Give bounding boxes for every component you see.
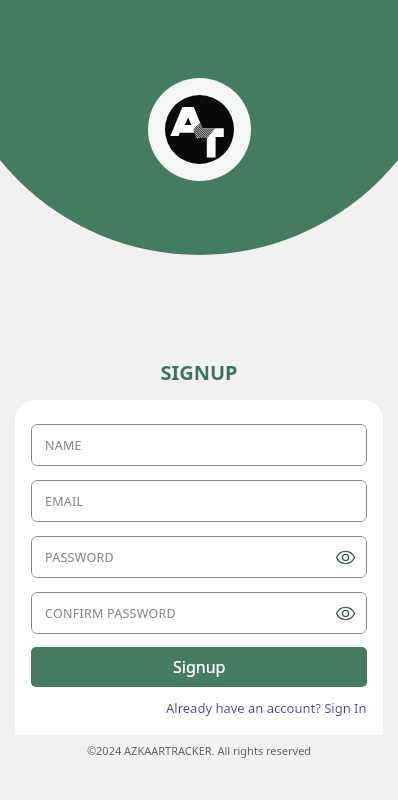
button[interactable]: Show password bbox=[334, 602, 356, 624]
staticText: SIGNUP bbox=[0, 359, 398, 386]
button[interactable]: Signup bbox=[31, 647, 367, 687]
staticText: EMAIL bbox=[45, 493, 84, 510]
button[interactable]: Show password bbox=[334, 546, 356, 568]
button[interactable]: PASSWORD bbox=[31, 536, 367, 578]
button[interactable]: CONFIRM PASSWORD bbox=[31, 592, 367, 634]
button[interactable]: EMAIL bbox=[31, 480, 367, 522]
staticText: NAME bbox=[45, 437, 82, 454]
staticText: PASSWORD bbox=[45, 549, 114, 566]
staticText: ©2024 AZKAARTRACKER. All rights reserved bbox=[0, 743, 398, 758]
staticText: CONFIRM PASSWORD bbox=[45, 605, 176, 622]
button[interactable]: Already have an account? Sign In bbox=[166, 697, 367, 719]
button[interactable]: NAME bbox=[31, 424, 367, 466]
staticText: Signup bbox=[173, 656, 226, 678]
